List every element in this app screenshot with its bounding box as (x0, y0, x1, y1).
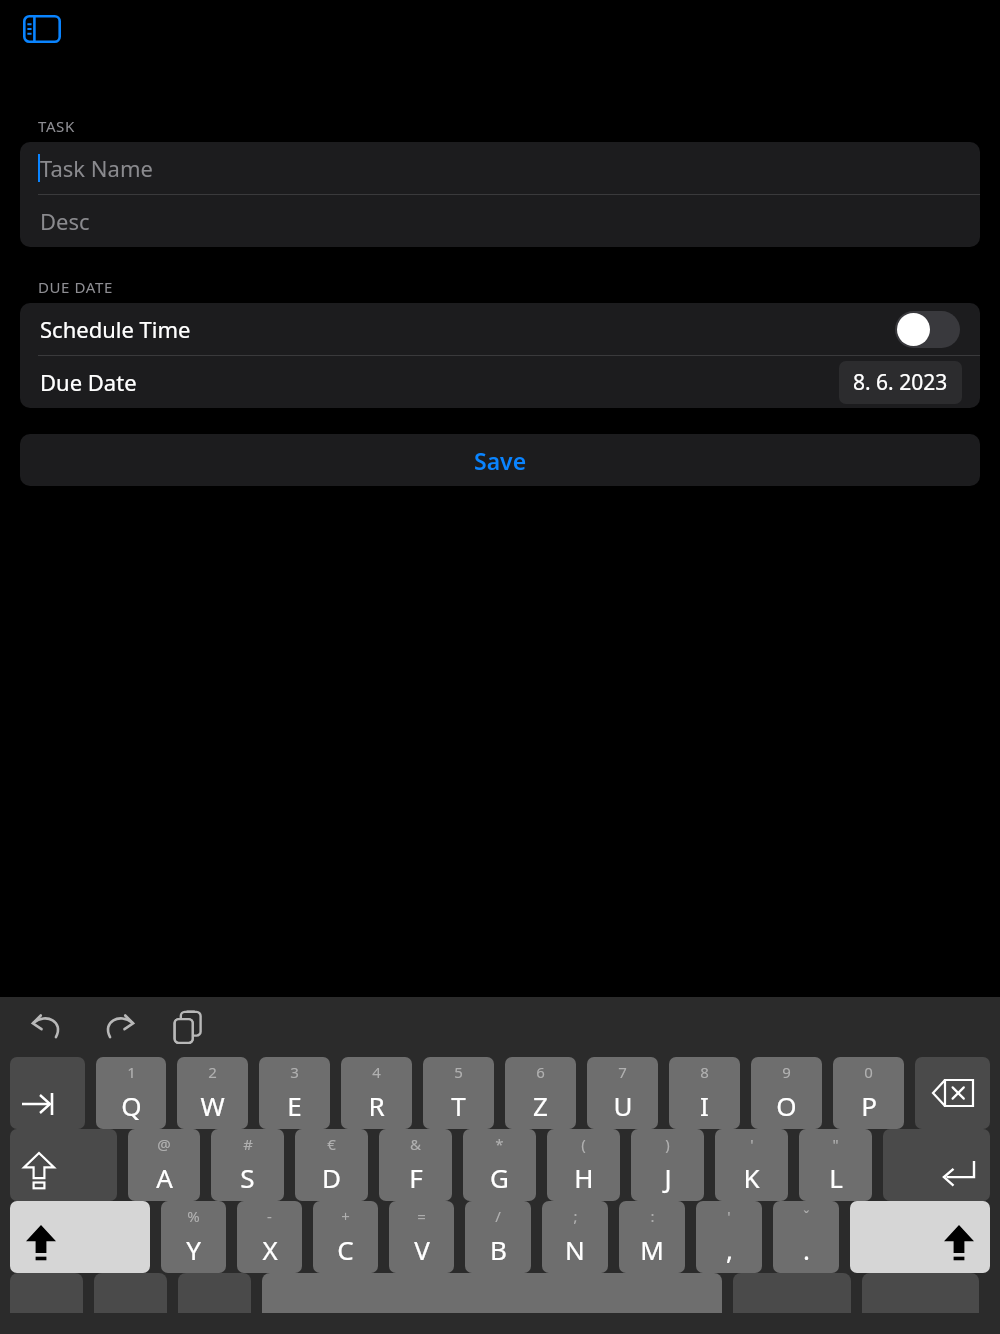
staticText: L (829, 1160, 843, 1195)
staticText: Schedule Time (40, 314, 191, 344)
staticText: Q (121, 1088, 142, 1123)
staticText: P (861, 1088, 877, 1123)
other: Backspace (933, 1079, 973, 1107)
button[interactable]: ( (547, 1129, 620, 1201)
staticText: " (832, 1134, 839, 1154)
button[interactable]: Paste (162, 1001, 214, 1053)
staticText: 4 (372, 1062, 381, 1082)
button[interactable]: Return (883, 1129, 990, 1201)
button[interactable]: - (237, 1201, 302, 1273)
staticText: / (495, 1206, 501, 1226)
button[interactable]: 1 (96, 1057, 166, 1129)
other: Caps Lock (24, 1153, 54, 1189)
staticText: & (410, 1134, 421, 1154)
other: Shift (26, 1225, 56, 1261)
staticText: ' (750, 1134, 754, 1154)
staticText: J (664, 1160, 672, 1195)
button[interactable]: 9 (751, 1057, 822, 1129)
button[interactable]: ; (542, 1201, 608, 1273)
button[interactable]: Schedule Time (20, 303, 980, 355)
staticText: @ (157, 1134, 171, 1154)
staticText: ; (573, 1206, 578, 1226)
button[interactable]: 3 (259, 1057, 330, 1129)
button[interactable]: Schedule Time toggle (895, 311, 960, 348)
staticText: F (409, 1160, 423, 1195)
button[interactable]: ' (696, 1201, 762, 1273)
staticText: C (337, 1232, 354, 1267)
staticText: O (776, 1088, 797, 1123)
button[interactable]: Undo (22, 1001, 74, 1053)
button[interactable]: Caps Lock (10, 1129, 117, 1201)
button[interactable]: + (313, 1201, 378, 1273)
button[interactable]: ) (631, 1129, 704, 1201)
button[interactable]: Shift (850, 1201, 990, 1273)
staticText: € (327, 1134, 336, 1154)
button[interactable]: Task Name (20, 142, 980, 194)
staticText: G (490, 1160, 509, 1195)
button[interactable]: % (161, 1201, 226, 1273)
other: Return (942, 1161, 974, 1187)
staticText: M (640, 1232, 664, 1267)
button[interactable]: " (799, 1129, 872, 1201)
staticText: # (243, 1134, 253, 1154)
button[interactable]: Toggle sidebar (22, 12, 62, 46)
button[interactable]: Shift (10, 1201, 150, 1273)
staticText: V (414, 1232, 430, 1267)
staticText: T (451, 1088, 466, 1123)
staticText: - (267, 1206, 272, 1226)
button[interactable]: @ (128, 1129, 200, 1201)
button[interactable]: * (463, 1129, 536, 1201)
staticText: X (262, 1232, 278, 1267)
button[interactable]: 0 (833, 1057, 904, 1129)
button[interactable]: 6 (505, 1057, 576, 1129)
staticText: S (240, 1160, 255, 1195)
button[interactable]: = (389, 1201, 454, 1273)
button[interactable]: Due Date (20, 356, 980, 408)
button[interactable]: € (295, 1129, 368, 1201)
button[interactable]: ' (715, 1129, 788, 1201)
button[interactable]: 5 (423, 1057, 494, 1129)
staticText: Z (533, 1088, 548, 1123)
staticText: ' (727, 1206, 731, 1226)
staticText: . (803, 1232, 810, 1267)
staticText: I (700, 1088, 709, 1123)
button[interactable]: ˇ (773, 1201, 839, 1273)
staticText: 6 (536, 1062, 545, 1082)
button[interactable]: & (379, 1129, 452, 1201)
button[interactable]: Tab (10, 1057, 85, 1129)
button[interactable]: 7 (587, 1057, 658, 1129)
button[interactable]: 8 (669, 1057, 740, 1129)
staticText: 7 (618, 1062, 627, 1082)
staticText: 8 (700, 1062, 709, 1082)
staticText: 8. 6. 2023 (853, 368, 948, 397)
staticText: N (565, 1232, 585, 1267)
button[interactable]: 2 (177, 1057, 248, 1129)
button[interactable]: Save (20, 434, 980, 486)
staticText: 1 (127, 1062, 136, 1082)
staticText: Desc (40, 206, 90, 236)
button[interactable]: Backspace (915, 1057, 990, 1129)
staticText: Y (186, 1232, 201, 1267)
button[interactable]: 4 (341, 1057, 412, 1129)
button[interactable]: 8. 6. 2023 (839, 361, 962, 404)
button[interactable]: # (211, 1129, 284, 1201)
other: Shift (944, 1225, 974, 1261)
button[interactable]: : (619, 1201, 685, 1273)
staticText: Due Date (40, 367, 137, 397)
staticText: Task Name (40, 153, 153, 183)
button[interactable]: Desc (20, 195, 980, 247)
staticText: ( (581, 1134, 586, 1154)
staticText: * (495, 1134, 504, 1154)
staticText: D (322, 1160, 341, 1195)
staticText: E (287, 1088, 302, 1123)
button[interactable]: / (465, 1201, 531, 1273)
staticText: DUE DATE (38, 277, 113, 297)
button[interactable]: Redo (92, 1001, 144, 1053)
staticText: 2 (208, 1062, 217, 1082)
